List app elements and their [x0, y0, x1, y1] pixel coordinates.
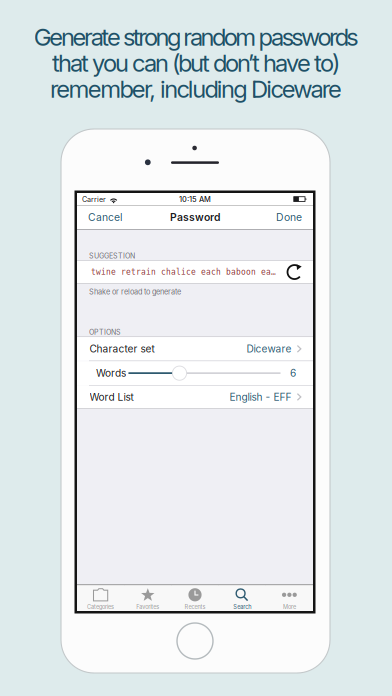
staticText: More: [283, 603, 296, 610]
staticText: Search: [233, 603, 251, 610]
button[interactable]: Cancel: [88, 206, 138, 229]
staticText: Character set: [89, 343, 154, 355]
staticText: Carrier: [82, 195, 106, 204]
staticText: Diceware: [246, 343, 291, 355]
staticText: 10:15 AM: [179, 195, 211, 204]
staticText: English - EFF: [229, 391, 291, 403]
button[interactable]: Done: [252, 206, 302, 229]
staticText: SUGGESTION: [89, 252, 135, 260]
staticText: that you can (but don’t have to): [52, 48, 340, 77]
button[interactable]: Categories: [77, 585, 124, 611]
button[interactable]: Recents: [171, 585, 219, 611]
staticText: Word List: [89, 391, 133, 403]
staticText: Favorites: [136, 603, 159, 610]
staticText: Generate strong random passwords: [34, 22, 358, 51]
button[interactable]: Reload suggested password: [77, 261, 313, 283]
button[interactable]: More: [266, 585, 313, 611]
staticText: Recents: [184, 603, 205, 610]
staticText: Words: [96, 367, 126, 379]
staticText: Cancel: [88, 211, 123, 224]
staticText: OPTIONS: [89, 328, 121, 336]
staticText: Password: [170, 211, 220, 224]
staticText: Done: [276, 211, 302, 224]
button[interactable]: Character set: [77, 337, 313, 361]
button[interactable]: Search: [219, 585, 266, 611]
button[interactable]: Favorites: [124, 585, 171, 611]
staticText: 6: [290, 367, 296, 379]
staticText: remember, including Diceware: [50, 74, 342, 103]
button[interactable]: Word List: [77, 386, 313, 408]
staticText: Categories: [87, 603, 114, 610]
staticText: Shake or reload to generate: [89, 287, 181, 296]
staticText: twine retrain chalice each baboon eati…: [91, 267, 278, 277]
